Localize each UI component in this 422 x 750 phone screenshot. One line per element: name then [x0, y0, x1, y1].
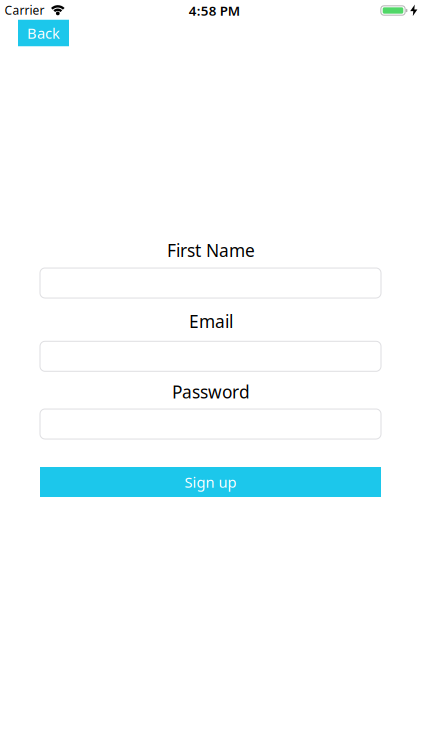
button[interactable]: Back — [18, 20, 69, 46]
staticText: Carrier — [4, 2, 44, 18]
staticText: Email — [189, 310, 233, 333]
staticText: 4:58 PM — [189, 2, 240, 19]
staticText: First Name — [167, 239, 255, 262]
staticText: Password — [172, 380, 250, 403]
staticText: Back — [27, 23, 60, 43]
staticText: Sign up — [184, 472, 236, 492]
button[interactable]: Sign up — [40, 467, 381, 497]
